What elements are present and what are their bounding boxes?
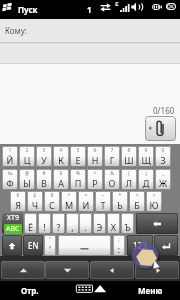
staticText: Д (138, 177, 154, 189)
staticText: З (155, 154, 171, 166)
button[interactable]: ; (113, 235, 125, 256)
staticText: Ж (155, 177, 171, 189)
button[interactable]: № (2, 169, 18, 190)
staticText: £ (27, 192, 43, 199)
staticText: ¥ (44, 192, 60, 199)
button[interactable]: % (70, 169, 86, 190)
staticText: 0 (155, 147, 171, 154)
button[interactable]: Left (90, 261, 134, 279)
button[interactable]: 8 (121, 146, 137, 167)
button[interactable]: Х (107, 213, 120, 234)
staticText: Й (2, 154, 18, 166)
button[interactable]: . (79, 213, 92, 234)
staticText: А (53, 177, 69, 189)
staticText: ~ (95, 192, 111, 199)
button[interactable]: , (66, 213, 79, 234)
staticText: № (2, 170, 18, 177)
button[interactable]: 3 (36, 146, 52, 167)
button[interactable]: EN (23, 235, 43, 256)
staticText: И (78, 199, 94, 211)
staticText: Т (95, 199, 111, 211)
staticText: Ц (19, 154, 35, 166)
staticText: Ё (24, 221, 37, 233)
staticText: ^ (87, 170, 103, 177)
button[interactable]: 7 (104, 146, 120, 167)
staticText: " (44, 236, 56, 243)
staticText: ) (138, 170, 154, 177)
staticText: ' (44, 243, 56, 255)
staticText: ( (121, 170, 137, 177)
staticText: 1 (2, 147, 18, 154)
staticText: 8 (121, 147, 137, 154)
button[interactable]: @ (19, 169, 35, 190)
button[interactable]: * (112, 191, 128, 212)
staticText: Ъ (121, 221, 134, 233)
button[interactable]: 1 (2, 146, 18, 167)
button[interactable]: $ (53, 169, 69, 190)
button[interactable]: ! (38, 213, 51, 234)
button[interactable]: ) (138, 169, 154, 190)
button[interactable]: Keyboard (72, 282, 108, 296)
button[interactable]: ¥ (44, 191, 60, 212)
button[interactable]: & (104, 169, 120, 190)
staticText: Б (129, 199, 145, 211)
button[interactable]: £ (27, 191, 43, 212)
button[interactable]: Отр. (0, 281, 60, 300)
button[interactable]: XT9 ABC (2, 213, 23, 234)
staticText: Х (107, 221, 120, 233)
staticText: Ы (19, 177, 35, 189)
staticText: = (78, 192, 94, 199)
staticText: Пуск (18, 4, 38, 15)
staticText: 123 (133, 240, 147, 251)
staticText: 3 (36, 147, 52, 154)
staticText: П (70, 177, 86, 189)
staticText: Э (93, 221, 106, 233)
staticText: Ч (27, 199, 43, 211)
button[interactable]: Shift (2, 235, 22, 256)
staticText: Ш (121, 154, 137, 166)
button[interactable]: Э (93, 213, 106, 234)
button[interactable]: 5 (70, 146, 86, 167)
button[interactable]: 4 (53, 146, 69, 167)
staticText: % (70, 170, 86, 177)
button[interactable]: Enter (154, 235, 178, 256)
button[interactable]: Up (1, 261, 45, 279)
staticText: ! (38, 221, 51, 233)
button[interactable]: € (10, 191, 26, 212)
button[interactable]: Right (135, 261, 179, 279)
staticText: _ (155, 170, 171, 177)
button[interactable]: Ё (24, 213, 37, 234)
button[interactable]: Down (45, 261, 89, 279)
button[interactable]: + (61, 191, 77, 212)
staticText: 9 (138, 147, 154, 154)
button[interactable]: < (129, 191, 145, 212)
staticText: 1 (87, 4, 92, 15)
button[interactable]: ^ (87, 169, 103, 190)
button[interactable]: Attach (145, 116, 176, 141)
button[interactable] (58, 235, 111, 256)
button[interactable]: _ (155, 169, 171, 190)
button[interactable]: Меню (120, 281, 180, 300)
button[interactable]: " (44, 235, 56, 256)
button[interactable]: Backspace (136, 213, 178, 234)
button[interactable]: Ъ (121, 213, 134, 234)
staticText: 2 (19, 147, 35, 154)
staticText: ? (52, 221, 65, 233)
staticText: & (104, 170, 120, 177)
button[interactable]: ? (52, 213, 65, 234)
button[interactable]: 0 (155, 146, 171, 167)
staticText: Г (104, 154, 120, 166)
button[interactable]: = (78, 191, 94, 212)
staticText: > (146, 192, 162, 199)
button[interactable]: ( (121, 169, 137, 190)
button[interactable]: 2 (19, 146, 35, 167)
button[interactable]: 9 (138, 146, 154, 167)
button[interactable]: 6 (87, 146, 103, 167)
staticText: 7 (104, 147, 120, 154)
button[interactable]: # (36, 169, 52, 190)
staticText: , (66, 221, 79, 233)
button[interactable]: > (146, 191, 162, 212)
button[interactable]: 123 (127, 235, 153, 256)
button[interactable]: ~ (95, 191, 111, 212)
staticText: Отр. (21, 285, 39, 296)
